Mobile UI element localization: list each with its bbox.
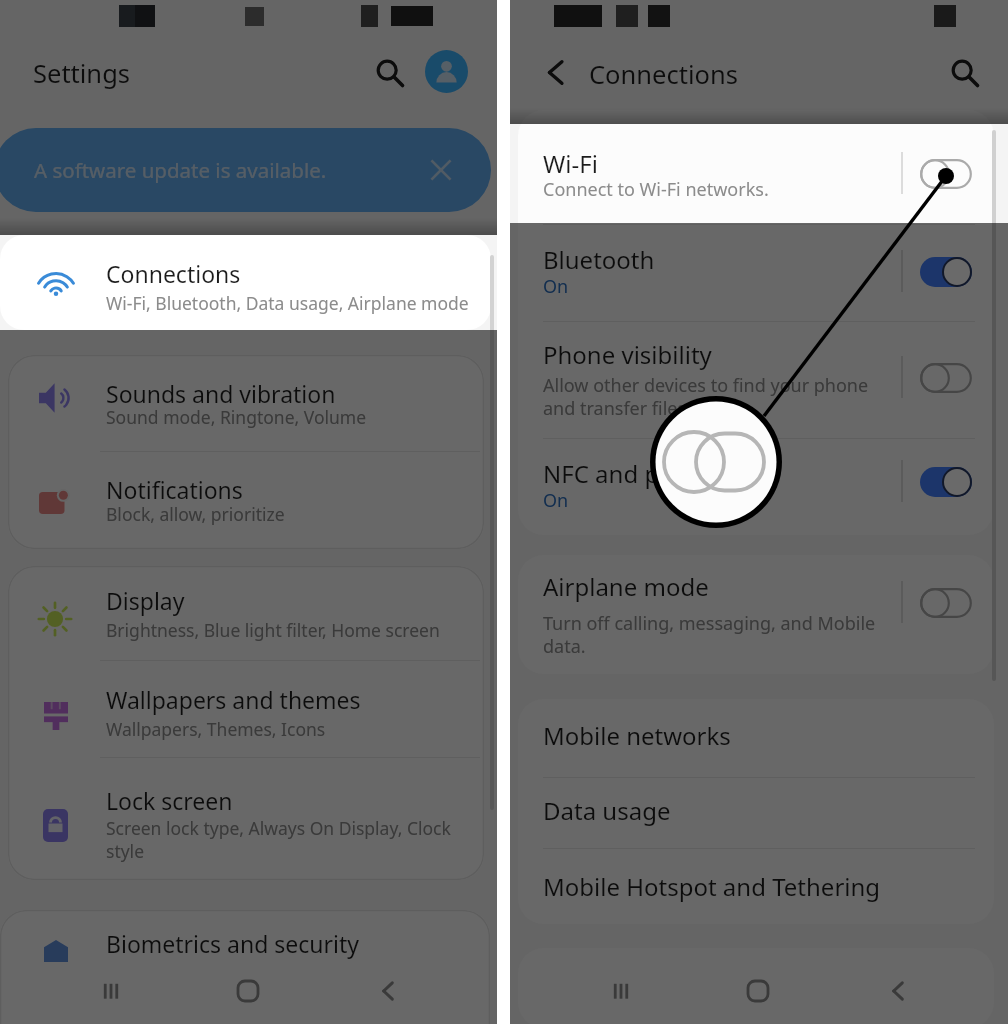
staticText: Notifications	[106, 474, 243, 505]
staticText: Phone visibility	[543, 338, 712, 371]
button[interactable]: Back	[534, 50, 578, 94]
staticText: Connect to Wi-Fi networks.	[543, 177, 769, 202]
button[interactable]: NFC and payment toggle	[920, 467, 972, 497]
button[interactable]: Search	[367, 50, 411, 94]
staticText: Wi-Fi	[543, 147, 598, 180]
staticText: Data usage	[543, 794, 671, 827]
button[interactable]: Wi-Fi toggle	[920, 159, 972, 189]
button[interactable]: Phone visibility toggle	[920, 363, 972, 393]
button[interactable]: Back	[358, 963, 418, 1019]
button[interactable]	[8, 566, 484, 880]
staticText: Connections	[106, 258, 241, 289]
button[interactable]	[0, 910, 490, 1024]
staticText: Sounds and vibration	[106, 378, 336, 409]
staticText: Lock screen	[106, 785, 233, 816]
button[interactable]: Home	[728, 963, 788, 1019]
staticText: Connections	[589, 57, 738, 92]
staticText: Block, allow, prioritize	[106, 502, 285, 526]
staticText: On	[543, 274, 569, 299]
button[interactable]: Recents	[591, 963, 651, 1019]
staticText: Allow other devices to find your phone a…	[543, 373, 901, 420]
button[interactable]	[518, 110, 994, 535]
button[interactable]: Back	[868, 963, 928, 1019]
staticText: Brightness, Blue light filter, Home scre…	[106, 618, 440, 642]
staticText: Screen lock type, Always On Display, Clo…	[106, 816, 454, 863]
button[interactable]: Dismiss	[425, 154, 457, 186]
staticText: NFC and payment	[543, 457, 745, 490]
button[interactable]	[8, 355, 484, 549]
staticText: Wallpapers and themes	[106, 684, 361, 715]
staticText: Airplane mode	[543, 570, 709, 603]
button[interactable]	[518, 555, 994, 674]
staticText: Wallpapers, Themes, Icons	[106, 717, 326, 741]
button[interactable]: Recents	[81, 963, 141, 1019]
button[interactable]: Search	[942, 50, 986, 94]
button[interactable]: Account	[425, 50, 468, 93]
button[interactable]	[518, 699, 994, 924]
staticText: Wi-Fi, Bluetooth, Data usage, Airplane m…	[106, 291, 469, 315]
staticText: Display	[106, 585, 185, 616]
staticText: Mobile Hotspot and Tethering	[543, 870, 881, 903]
staticText: Sound mode, Ringtone, Volume	[106, 405, 367, 429]
staticText: Bluetooth	[543, 243, 655, 276]
staticText: On	[543, 488, 569, 513]
button[interactable]	[0, 235, 491, 330]
staticText: Settings	[33, 56, 131, 91]
staticText: Turn off calling, messaging, and Mobile …	[543, 611, 895, 658]
staticText: Mobile networks	[543, 719, 731, 752]
button[interactable]: Airplane mode toggle	[920, 588, 972, 618]
staticText: A software update is available.	[34, 156, 327, 184]
button[interactable]: Home	[218, 963, 278, 1019]
button[interactable]: Bluetooth toggle	[920, 257, 972, 287]
button[interactable]: A software update is available.	[0, 128, 491, 212]
staticText: Biometrics and security	[106, 928, 360, 959]
